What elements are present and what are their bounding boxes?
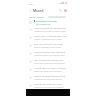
button[interactable]: Search bbox=[58, 8, 63, 13]
staticText: Welcome aboard the service bbox=[34, 61, 66, 64]
staticText: Payment done successfully bbox=[34, 85, 64, 88]
button[interactable]: Please review and approve this document … bbox=[26, 49, 70, 57]
staticText: Team meeting this week bbox=[34, 45, 61, 48]
staticText: Thanks for paying, your receipt is attac… bbox=[34, 82, 67, 85]
staticText: Congrats! You are bbox=[36, 19, 57, 22]
button[interactable]: Account bbox=[63, 8, 68, 13]
button[interactable]: Thanks for paying, your receipt is attac… bbox=[26, 81, 70, 89]
staticText: Newsletter for this month bbox=[34, 77, 63, 80]
staticText: A new sign in from a device was noticed … bbox=[34, 66, 67, 69]
staticText: Order shipped from store bbox=[34, 37, 63, 40]
staticText: Security alert for account bbox=[34, 69, 62, 72]
button[interactable]: A new sign in from a device was noticed … bbox=[26, 65, 70, 73]
button[interactable]: Congrats! You are bbox=[29, 19, 67, 25]
button[interactable]: Back bbox=[28, 8, 33, 13]
staticText: 9:41 bbox=[29, 2, 34, 5]
staticText: Get started by setting up your profile t… bbox=[34, 58, 67, 61]
staticText: Join us at ten in the main meeting room … bbox=[34, 42, 67, 45]
staticText: Daily Update bbox=[29, 15, 45, 18]
button[interactable]: Join us at ten in the main meeting room … bbox=[26, 41, 70, 49]
button[interactable]: Get started by setting up your profile t… bbox=[26, 57, 70, 65]
button[interactable]: Track your package with the link below n… bbox=[26, 33, 70, 41]
staticText: Please review and approve this document … bbox=[34, 50, 67, 53]
staticText: Invoice ready to review now bbox=[34, 53, 65, 56]
staticText: Here is what happened this week for you … bbox=[34, 26, 67, 29]
staticText: Mixed bbox=[33, 8, 44, 13]
button[interactable]: Here is what happened this week for you … bbox=[26, 25, 70, 33]
staticText: Weekly summary report here bbox=[34, 29, 67, 32]
staticText: all caught up bbox=[36, 22, 51, 25]
staticText: Track your package with the link below n… bbox=[34, 34, 67, 37]
button[interactable]: Read the latest stories and updates now … bbox=[26, 73, 70, 81]
staticText: Read the latest stories and updates now … bbox=[34, 74, 67, 77]
